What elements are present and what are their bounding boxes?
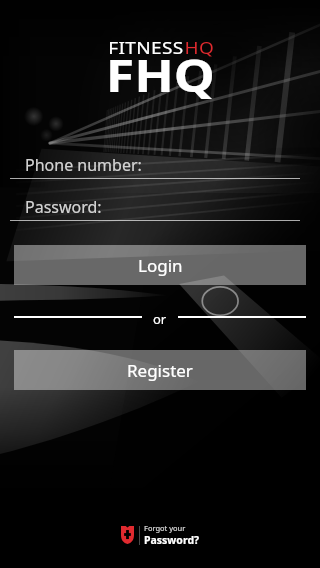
staticText: Register — [127, 359, 193, 382]
staticText: Password? — [144, 533, 200, 547]
staticText: HQ — [184, 36, 215, 59]
staticText: Password: — [25, 196, 102, 218]
button[interactable]: Forgot your — [121, 523, 200, 547]
staticText: Forgot your — [144, 523, 186, 533]
staticText: FITNESS — [108, 36, 184, 59]
staticText: or — [153, 310, 167, 324]
staticText: FHQ — [106, 45, 215, 105]
button[interactable]: Login — [14, 245, 306, 285]
staticText: Phone number: — [25, 154, 142, 176]
button[interactable]: Register — [14, 350, 306, 390]
button[interactable]: Phone number: — [0, 154, 320, 179]
staticText: Login — [138, 254, 183, 277]
button[interactable]: Password: — [0, 196, 320, 221]
